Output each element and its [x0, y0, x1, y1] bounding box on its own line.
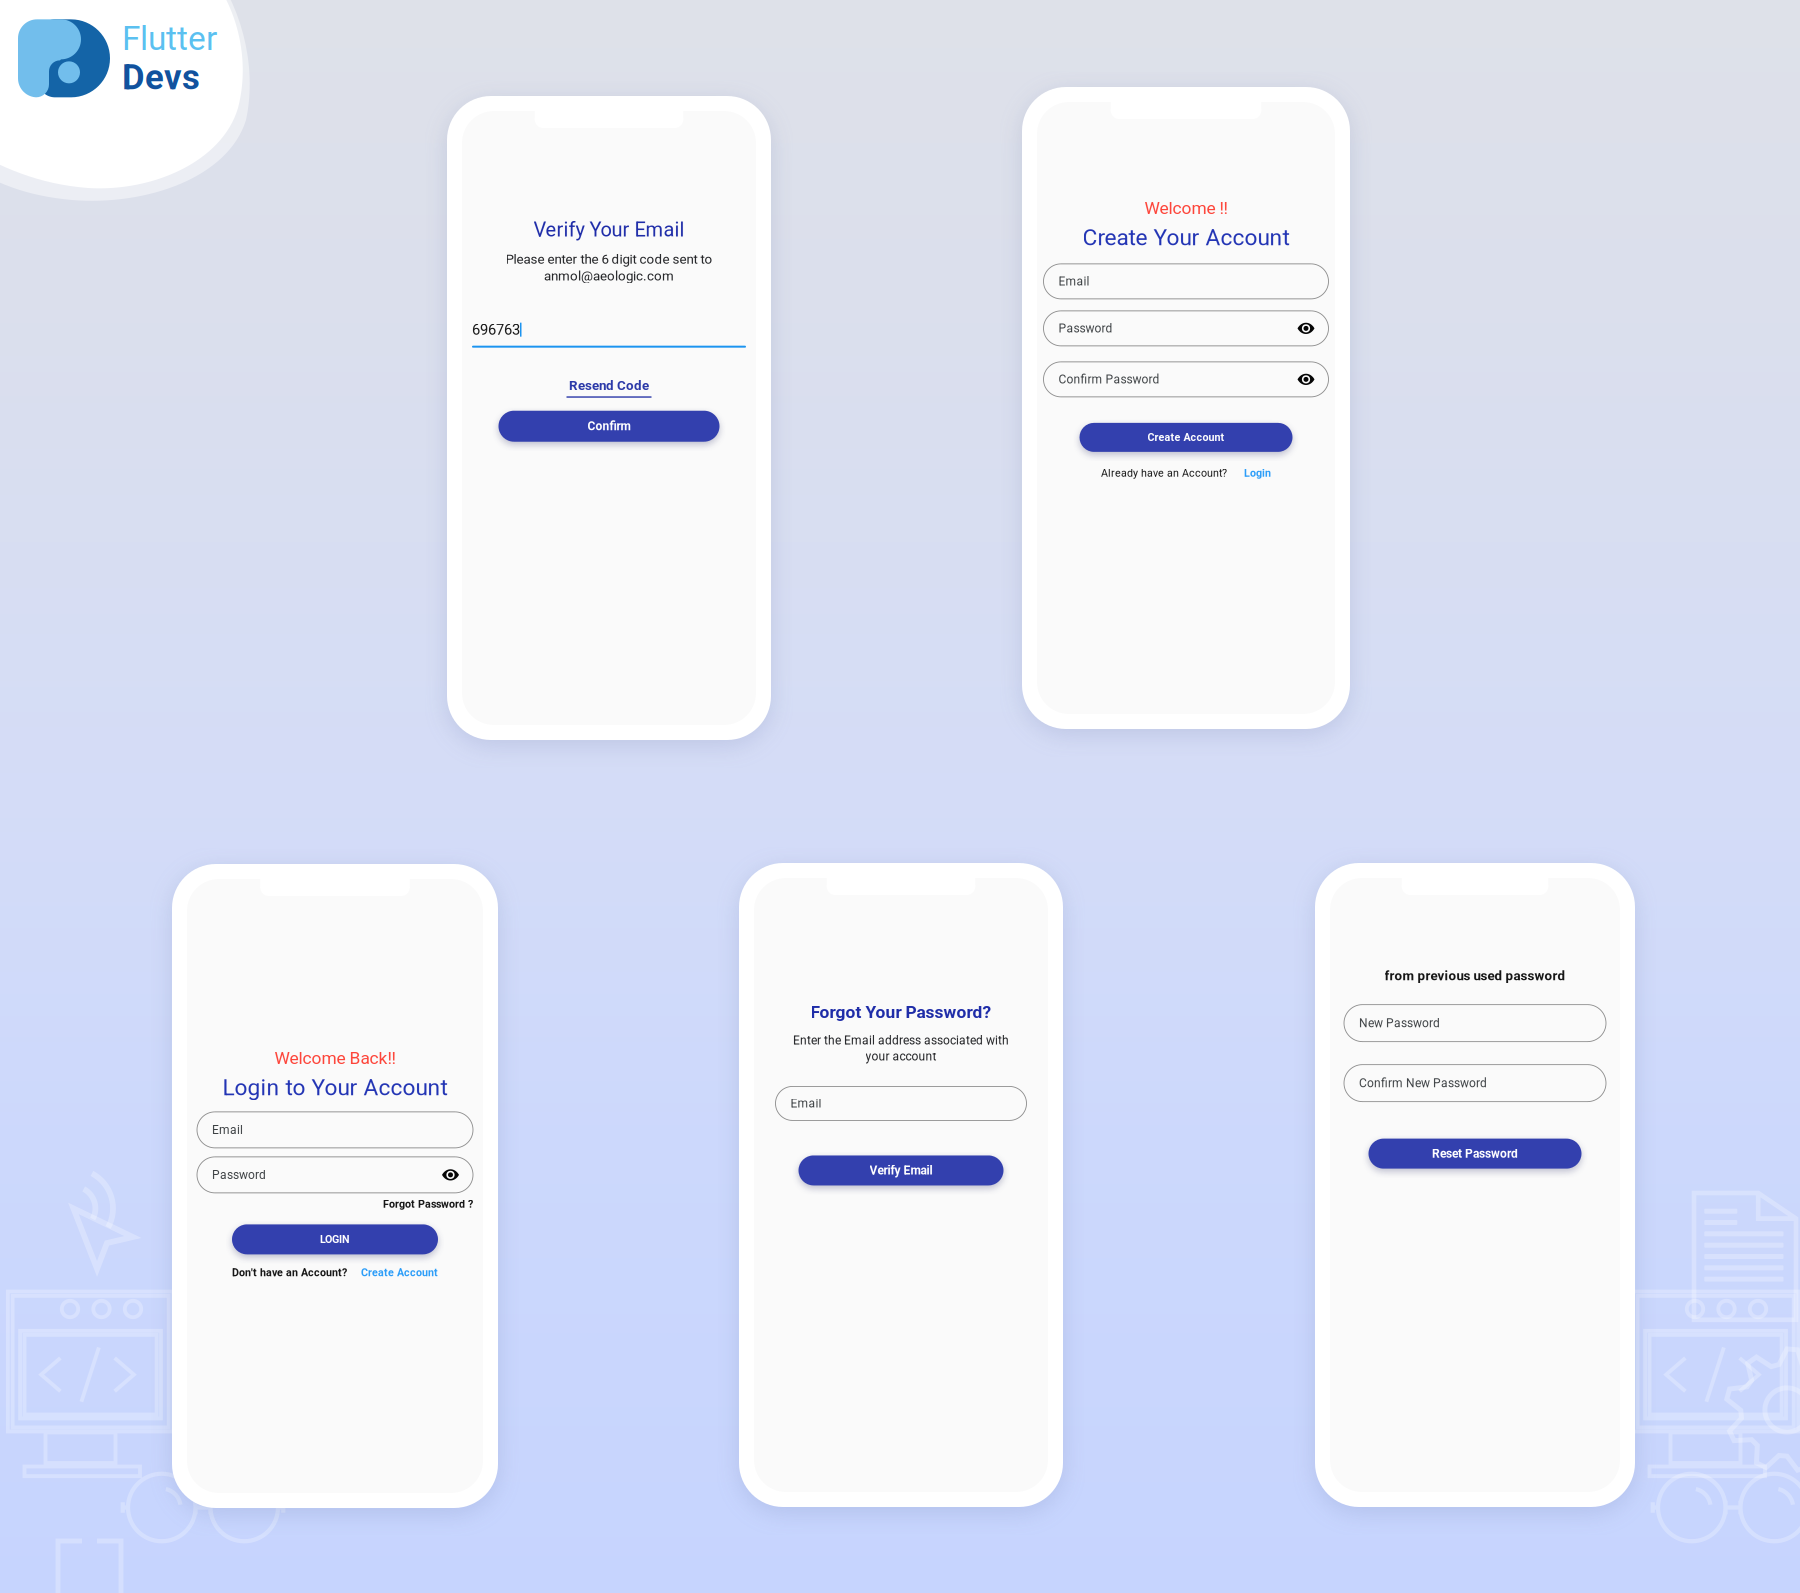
staticText: Welcome !!: [1144, 198, 1227, 218]
button[interactable]: Password: [197, 1157, 473, 1193]
button[interactable]: New Password: [1344, 1005, 1606, 1042]
staticText: Login to Your Account: [222, 1074, 447, 1101]
staticText: Forgot Your Password?: [810, 1002, 991, 1022]
button[interactable]: Forgot Password ?: [383, 1198, 473, 1210]
staticText: from previous used password: [1384, 968, 1565, 984]
staticText: LOGIN: [320, 1233, 350, 1246]
button[interactable]: Email: [197, 1112, 473, 1148]
staticText: New Password: [1359, 1016, 1440, 1030]
staticText: Devs: [122, 57, 200, 98]
staticText: Email: [212, 1123, 243, 1137]
staticText: Forgot Password ?: [383, 1198, 473, 1210]
staticText: Resend Code: [569, 378, 649, 393]
staticText: Create Your Account: [1082, 224, 1289, 251]
staticText: Welcome Back!!: [274, 1048, 395, 1068]
button[interactable]: Resend Code: [566, 378, 651, 398]
button[interactable]: Verify Email: [798, 1155, 1003, 1185]
staticText: Password: [212, 1168, 266, 1182]
staticText: Verify Email: [869, 1163, 932, 1177]
button[interactable]: Create Account: [361, 1266, 438, 1279]
staticText: Confirm Password: [1058, 372, 1159, 386]
staticText: anmol@aeologic.com: [544, 268, 674, 284]
button[interactable]: Email: [775, 1086, 1026, 1120]
staticText: Don't have an Account?: [232, 1266, 347, 1279]
staticText: Password: [1058, 321, 1112, 335]
staticText: Create Account: [1147, 431, 1224, 444]
staticText: Confirm New Password: [1359, 1076, 1487, 1090]
staticText: Email: [1058, 274, 1089, 288]
staticText: Login: [1244, 467, 1271, 479]
staticText: Email: [790, 1096, 821, 1110]
button[interactable]: Email: [1043, 264, 1328, 299]
staticText: Reset Password: [1432, 1147, 1518, 1161]
button[interactable]: Password: [1043, 311, 1328, 346]
staticText: Confirm: [587, 419, 630, 433]
staticText: Already have an Account?: [1101, 467, 1227, 479]
button[interactable]: Login: [1244, 467, 1271, 479]
staticText: your account: [865, 1049, 936, 1063]
staticText: 696763: [472, 321, 520, 338]
staticText: Verify Your Email: [533, 218, 684, 241]
staticText: Flutter: [122, 19, 217, 58]
staticText: Create Account: [361, 1266, 438, 1279]
button[interactable]: Confirm: [498, 411, 719, 442]
button[interactable]: Create Account: [1079, 423, 1292, 452]
staticText: Enter the Email address associated with: [793, 1033, 1009, 1047]
button[interactable]: Reset Password: [1368, 1139, 1581, 1169]
button[interactable]: Confirm Password: [1043, 362, 1328, 397]
button[interactable]: Confirm New Password: [1344, 1065, 1606, 1102]
button[interactable]: LOGIN: [232, 1224, 438, 1254]
staticText: Please enter the 6 digit code sent to: [505, 251, 712, 267]
